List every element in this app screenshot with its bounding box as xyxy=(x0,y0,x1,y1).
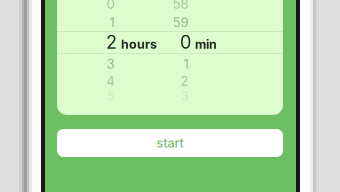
staticText: 2 xyxy=(106,31,117,53)
staticText: 3 xyxy=(181,88,188,103)
staticText: 58 xyxy=(172,0,188,12)
staticText: 5 xyxy=(107,88,114,103)
staticText: 3 xyxy=(106,56,114,72)
button[interactable]: start xyxy=(57,129,283,157)
staticText: 1 xyxy=(183,56,188,72)
staticText: 2 xyxy=(180,73,188,89)
staticText: 59 xyxy=(172,14,188,30)
staticText: start xyxy=(156,135,183,151)
staticText: 1 xyxy=(109,14,114,30)
staticText: 0 xyxy=(180,31,191,53)
staticText: 4 xyxy=(106,73,114,89)
staticText: 0 xyxy=(106,0,114,12)
staticText: min xyxy=(195,37,217,52)
staticText: hours xyxy=(121,37,157,52)
